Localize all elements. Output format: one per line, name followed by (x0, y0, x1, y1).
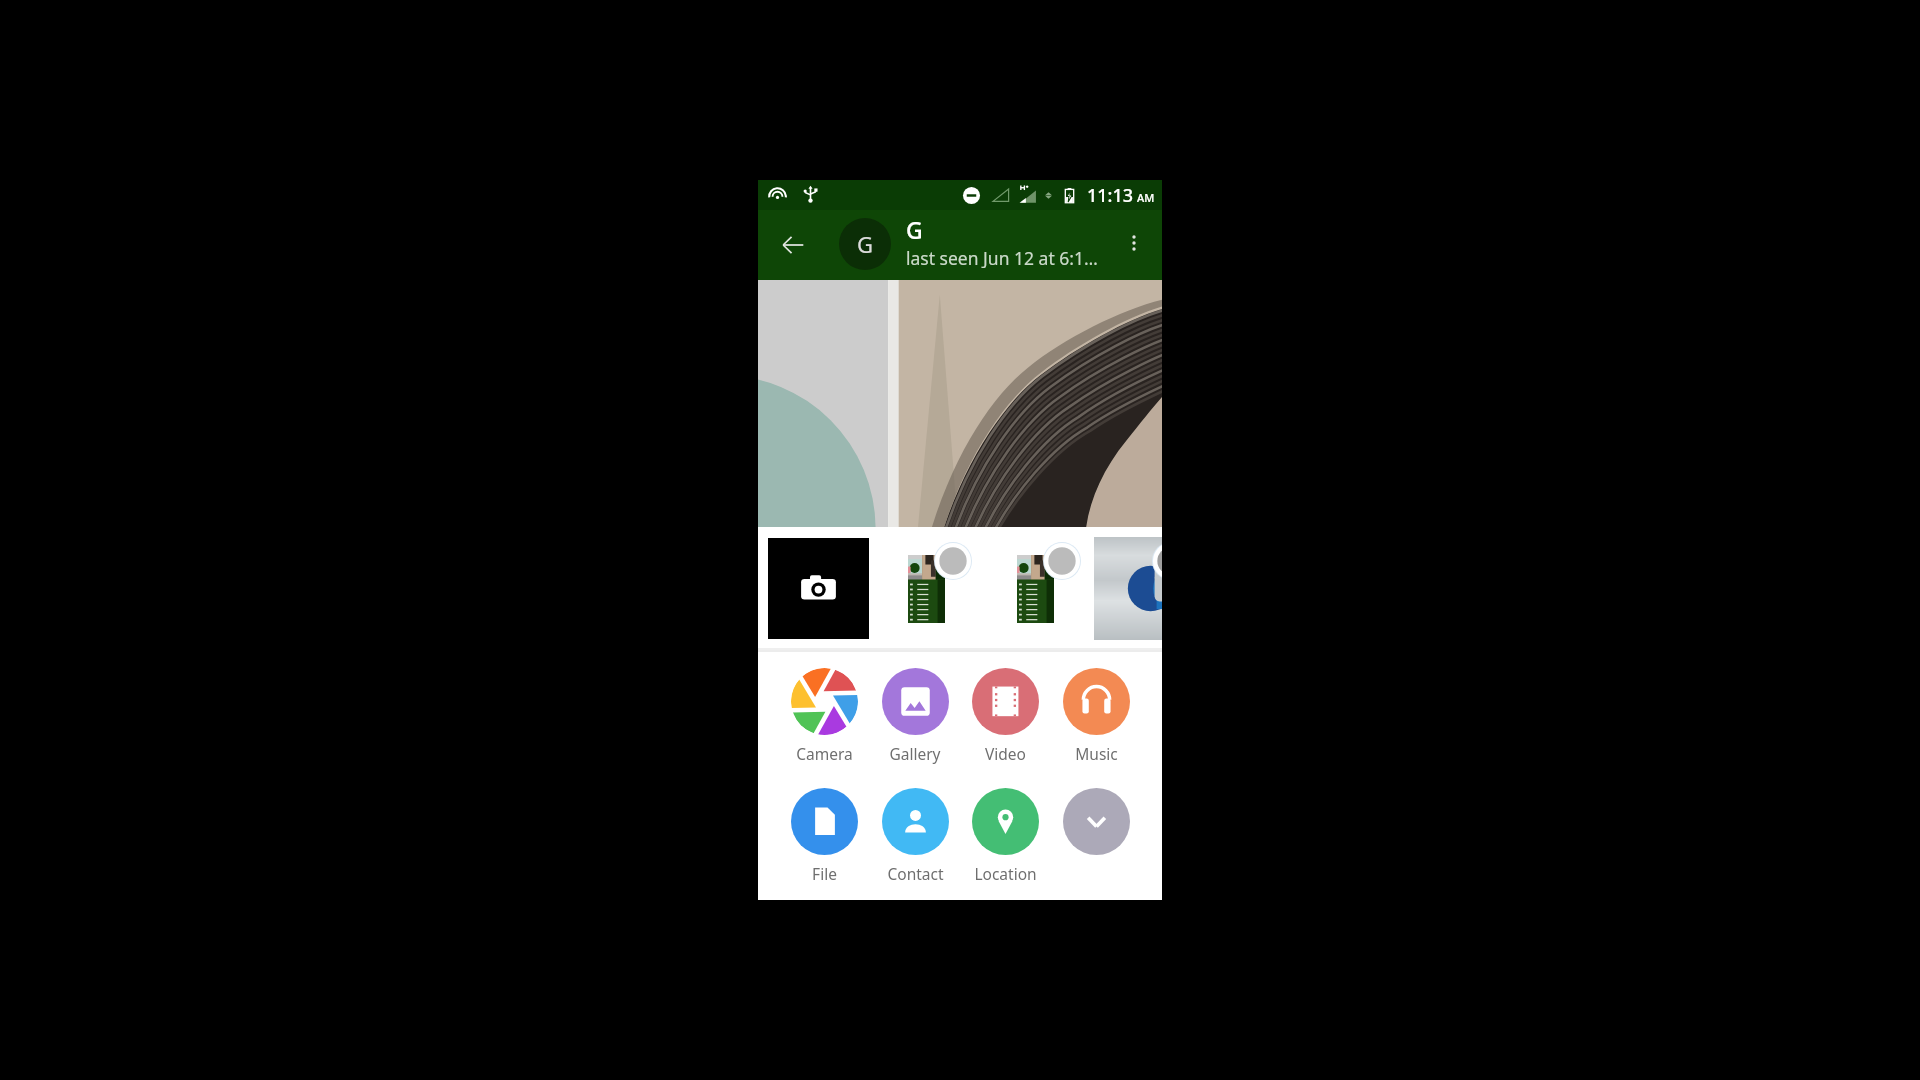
button[interactable]: More (1051, 788, 1141, 893)
button[interactable]: Location (960, 788, 1050, 893)
staticText: Camera (796, 743, 853, 764)
staticText: Gallery (889, 743, 941, 764)
button[interactable]: Screenshot, selected (985, 538, 1086, 639)
staticText: Location (974, 863, 1037, 884)
staticText: 11:13 (1087, 183, 1134, 208)
button[interactable]: Back (770, 222, 816, 268)
button[interactable]: G (906, 214, 1111, 268)
button[interactable]: Screenshot, selected (876, 538, 977, 639)
staticText: Video (985, 743, 1026, 764)
button[interactable]: Video (960, 668, 1050, 773)
button[interactable]: More options (1113, 222, 1155, 264)
staticText: last seen Jun 12 at 6:1… (906, 246, 1098, 268)
staticText: File (812, 863, 837, 884)
button[interactable]: G (839, 218, 891, 270)
button[interactable]: Music (1051, 668, 1141, 773)
button[interactable]: Contact (870, 788, 960, 893)
button[interactable]: Gallery (870, 668, 960, 773)
button[interactable]: Take photo (768, 538, 869, 639)
button[interactable]: Camera (779, 668, 869, 773)
staticText: AM (1137, 190, 1155, 205)
staticText: Music (1075, 743, 1118, 764)
staticText: G (857, 229, 874, 259)
button[interactable]: Photo, selected (1094, 537, 1162, 640)
button[interactable]: File (779, 788, 869, 893)
staticText: G (906, 214, 923, 245)
staticText: Contact (887, 863, 944, 884)
